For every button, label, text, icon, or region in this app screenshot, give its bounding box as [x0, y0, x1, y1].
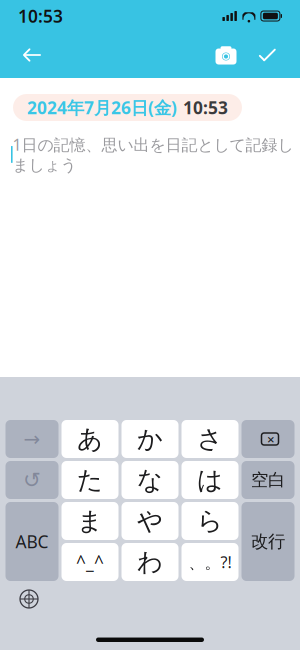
- staticText: さ: [197, 423, 223, 454]
- button[interactable]: Switch keyboard: [14, 584, 44, 614]
- button[interactable]: や: [121, 502, 178, 540]
- staticText: は: [197, 464, 223, 495]
- button[interactable]: た: [61, 461, 118, 499]
- staticText: 空白: [251, 469, 285, 491]
- button[interactable]: Camera: [206, 35, 246, 75]
- button[interactable]: 空白: [241, 461, 294, 499]
- button[interactable]: ら: [181, 502, 238, 540]
- staticText: 10:53: [183, 96, 228, 119]
- button[interactable]: Done: [246, 35, 290, 75]
- staticText: か: [137, 423, 163, 454]
- button[interactable]: さ: [181, 420, 238, 458]
- staticText: →: [23, 428, 40, 450]
- staticText: 2024年7月26日(金): [27, 96, 177, 119]
- button[interactable]: →: [5, 420, 58, 458]
- button[interactable]: は: [181, 461, 238, 499]
- staticText: ら: [197, 505, 223, 536]
- staticText: あ: [77, 423, 103, 454]
- staticText: ×: [267, 430, 275, 448]
- button[interactable]: Delete: [241, 420, 294, 458]
- button[interactable]: ↺: [5, 461, 58, 499]
- button[interactable]: あ: [61, 420, 118, 458]
- staticText: ↺: [23, 468, 41, 492]
- button[interactable]: ^_^: [61, 543, 118, 581]
- button[interactable]: Back: [10, 35, 54, 75]
- button[interactable]: 改行: [241, 502, 294, 581]
- staticText: ABC: [15, 530, 48, 553]
- staticText: な: [137, 464, 163, 495]
- staticText: ^_^: [76, 550, 104, 573]
- button[interactable]: な: [121, 461, 178, 499]
- staticText: た: [77, 464, 103, 495]
- staticText: わ: [137, 546, 163, 577]
- button[interactable]: ま: [61, 502, 118, 540]
- button[interactable]: 、。?!: [181, 543, 238, 581]
- staticText: 10:53: [18, 4, 63, 27]
- staticText: ま: [77, 505, 103, 536]
- staticText: 改行: [251, 531, 285, 552]
- button[interactable]: わ: [121, 543, 178, 581]
- staticText: 1日の記憶、思い出を日記として記録しましょう: [13, 134, 294, 175]
- button[interactable]: か: [121, 420, 178, 458]
- button[interactable]: ABC: [5, 502, 58, 581]
- staticText: 、。?!: [188, 551, 231, 573]
- staticText: や: [137, 505, 163, 536]
